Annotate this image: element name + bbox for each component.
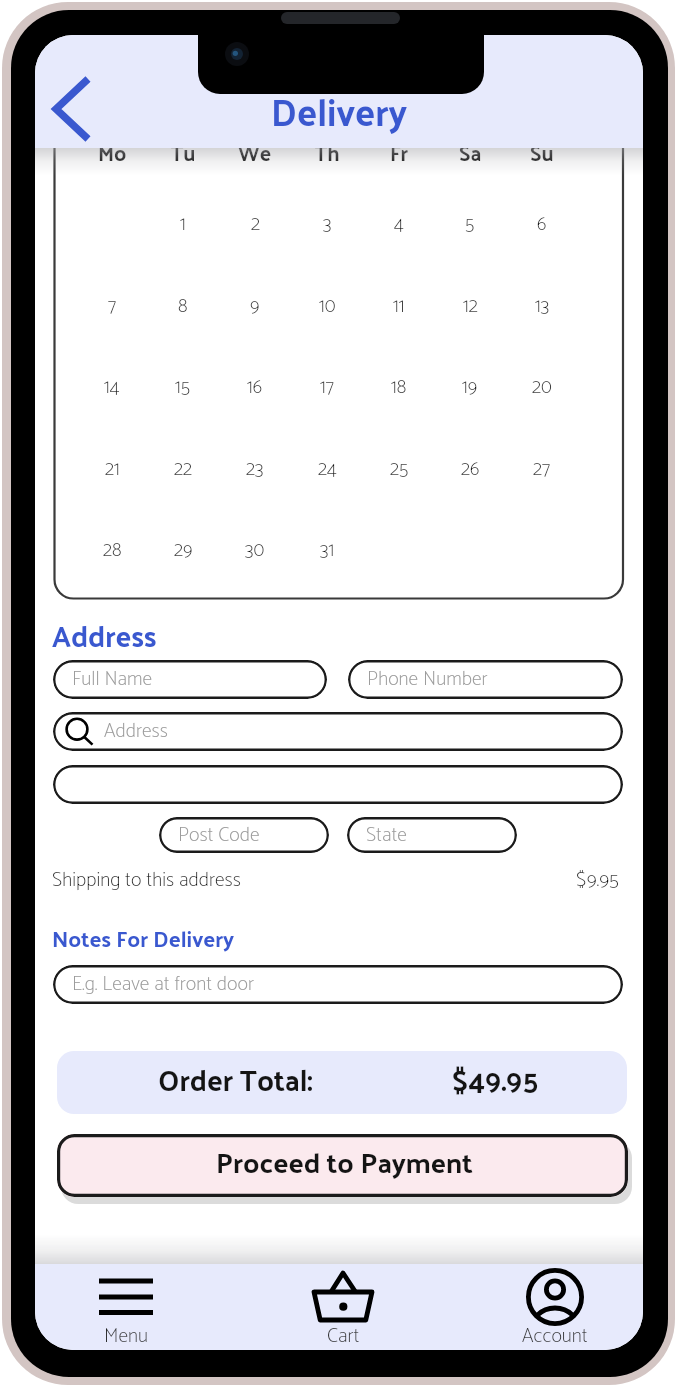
button[interactable]: 16 [225,367,285,407]
staticText: 30 [245,535,265,566]
button[interactable]: Mo [82,132,142,172]
staticText: 8 [178,291,188,322]
staticText: Tu [171,133,196,171]
staticText: Su [530,133,554,171]
button[interactable]: 28 [82,530,142,570]
button[interactable]: 25 [369,449,429,489]
button[interactable]: Address [53,712,623,751]
staticText: Sa [459,133,482,171]
staticText: 4 [394,209,404,240]
staticText: 5 [465,209,475,240]
button[interactable]: Th [297,132,357,172]
staticText: State [366,819,407,852]
staticText: E.g. Leave at front door [72,968,255,1001]
staticText: 11 [393,291,405,322]
button[interactable]: Proceed to Payment [57,1134,628,1197]
button[interactable]: Order Total: [57,1051,627,1114]
button[interactable]: 3 [297,204,357,244]
button[interactable]: E.g. Leave at front door [53,965,623,1004]
staticText: Delivery [271,77,407,144]
button[interactable]: Tu [153,132,213,172]
button[interactable]: 11 [369,286,429,326]
staticText: 20 [532,372,552,403]
staticText: 25 [390,454,409,485]
staticText: Cart [327,1320,360,1350]
staticText: 3 [323,209,332,240]
button[interactable]: Cart [293,1268,393,1350]
staticText: Account [522,1320,588,1350]
button[interactable]: 8 [153,286,213,326]
button[interactable]: 2 [225,204,285,244]
staticText: Menu [104,1320,149,1350]
button[interactable]: 21 [82,449,142,489]
staticText: 15 [175,372,191,403]
button[interactable]: 10 [297,286,357,326]
staticText: 9 [250,291,260,322]
button[interactable]: 1 [153,204,213,244]
staticText: Post Code [178,819,260,852]
staticText: 22 [174,454,192,485]
button[interactable]: 4 [369,204,429,244]
button[interactable]: State [347,817,517,853]
staticText: $49.95 [452,1053,539,1106]
button[interactable]: Full Name [53,660,327,699]
button[interactable]: 17 [297,367,357,407]
staticText: 18 [391,372,407,403]
staticText: 6 [537,209,547,240]
staticText: Order Total: [158,1053,313,1106]
button[interactable]: 29 [153,530,213,570]
staticText: 10 [319,291,336,322]
button[interactable]: 27 [512,449,572,489]
button[interactable]: 5 [440,204,500,244]
staticText: We [238,133,272,171]
button[interactable] [53,765,623,804]
button[interactable]: Sa [440,132,500,172]
staticText: Fr [390,133,409,171]
staticText: 28 [103,535,122,566]
button[interactable]: 18 [369,367,429,407]
button[interactable]: Back [50,73,94,145]
button[interactable]: We [225,132,285,172]
button[interactable]: Fr [369,132,429,172]
button[interactable]: 23 [225,449,285,489]
staticText: 7 [108,291,117,322]
staticText: 13 [535,291,550,322]
staticText: 31 [320,535,335,566]
button[interactable]: 9 [225,286,285,326]
staticText: Address [104,715,168,748]
button[interactable]: 12 [440,286,500,326]
staticText: 27 [533,454,551,485]
button[interactable]: Su [512,132,572,172]
staticText: 12 [463,291,478,322]
button[interactable]: 6 [512,204,572,244]
button[interactable]: Account [505,1268,605,1350]
button[interactable]: Post Code [159,817,329,853]
button[interactable]: 19 [440,367,500,407]
button[interactable]: 30 [225,530,285,570]
button[interactable]: 31 [297,530,357,570]
button[interactable]: 14 [82,367,142,407]
button[interactable]: Phone Number [348,660,623,699]
staticText: 23 [246,454,264,485]
staticText: 14 [104,372,120,403]
button[interactable]: 22 [153,449,213,489]
button[interactable]: 7 [82,286,142,326]
staticText: Th [315,133,340,171]
staticText: 19 [462,372,478,403]
button[interactable]: 24 [297,449,357,489]
button[interactable]: 13 [512,286,572,326]
button[interactable]: 15 [153,367,213,407]
staticText: 16 [247,372,263,403]
button[interactable]: Menu [76,1268,176,1350]
staticText: 29 [174,535,193,566]
staticText: Mo [98,133,127,171]
staticText: 17 [320,372,334,403]
staticText: Full Name [72,663,153,696]
button[interactable]: 26 [440,449,500,489]
button[interactable]: 20 [512,367,572,407]
staticText: Phone Number [367,663,488,696]
staticText: 26 [461,454,480,485]
staticText: 24 [318,454,337,485]
staticText: 2 [251,209,260,240]
staticText: 21 [105,454,120,485]
